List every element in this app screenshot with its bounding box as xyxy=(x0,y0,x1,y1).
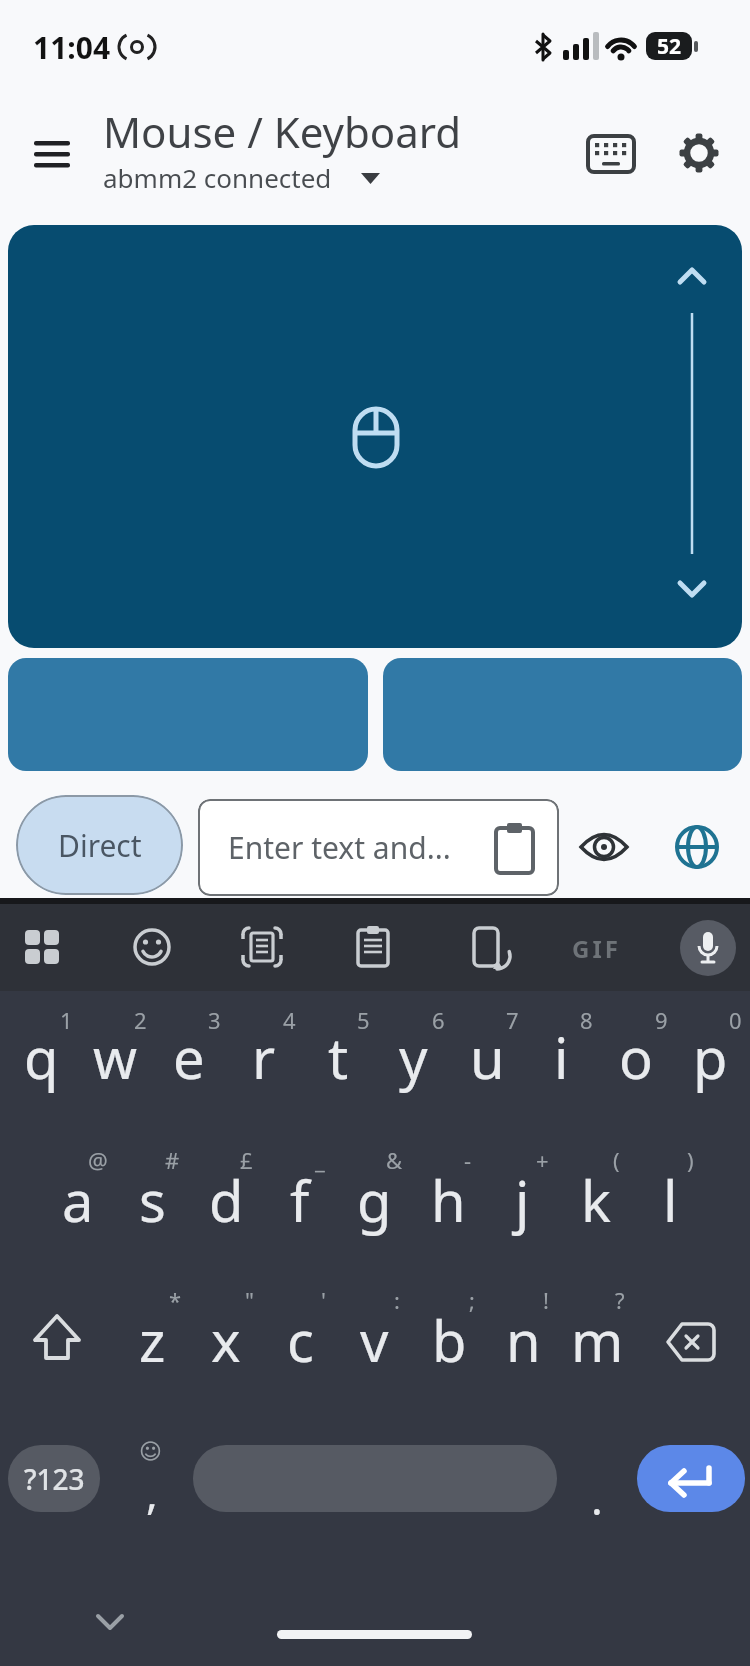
staticText: q xyxy=(24,1019,59,1095)
button[interactable] xyxy=(240,925,284,969)
staticText: , xyxy=(146,1462,158,1522)
button[interactable] xyxy=(578,822,630,872)
staticText: + xyxy=(536,1145,549,1175)
staticText: m xyxy=(571,1302,624,1378)
staticText: ' xyxy=(321,1285,326,1315)
button[interactable] xyxy=(466,925,510,969)
staticText: # xyxy=(165,1145,180,1175)
button[interactable] xyxy=(8,658,368,771)
staticText: 7 xyxy=(506,1005,519,1035)
button[interactable] xyxy=(586,130,636,176)
staticText: w xyxy=(93,1019,138,1095)
staticText: 8 xyxy=(580,1005,593,1035)
staticText: 5 xyxy=(357,1005,370,1035)
staticText: i xyxy=(554,1019,569,1095)
button[interactable] xyxy=(351,925,395,969)
staticText: c xyxy=(287,1302,314,1378)
staticText: g xyxy=(357,1162,392,1238)
staticText: Mouse / Keyboard xyxy=(103,103,462,160)
staticText: j xyxy=(515,1162,530,1238)
button[interactable] xyxy=(8,225,742,648)
button[interactable] xyxy=(20,925,64,969)
staticText: v xyxy=(360,1302,389,1378)
button[interactable] xyxy=(637,1445,745,1512)
staticText: y xyxy=(399,1019,428,1095)
staticText: _ xyxy=(315,1145,325,1175)
staticText: ( xyxy=(613,1145,620,1175)
staticText: ) xyxy=(687,1145,694,1175)
staticText: ? xyxy=(615,1285,625,1315)
staticText: 9 xyxy=(655,1005,668,1035)
staticText: . xyxy=(591,1468,603,1528)
button[interactable] xyxy=(680,920,736,976)
button[interactable] xyxy=(25,1310,89,1374)
staticText: £ xyxy=(240,1145,253,1175)
button[interactable] xyxy=(383,658,742,771)
staticText: k xyxy=(581,1162,611,1238)
staticText: 6 xyxy=(432,1005,445,1035)
staticText: 1 xyxy=(60,1005,73,1035)
staticText: : xyxy=(394,1285,400,1315)
staticText: ☺ xyxy=(139,1439,162,1465)
staticText: @ xyxy=(88,1145,108,1175)
staticText: " xyxy=(245,1285,254,1315)
staticText: ! xyxy=(543,1285,549,1315)
staticText: ; xyxy=(469,1285,475,1315)
button[interactable]: GIF xyxy=(560,928,632,968)
staticText: & xyxy=(386,1145,403,1175)
staticText: GIF xyxy=(572,932,621,965)
staticText: e xyxy=(173,1019,205,1095)
staticText: 4 xyxy=(283,1005,296,1035)
button[interactable] xyxy=(130,925,174,969)
staticText: r xyxy=(252,1019,276,1095)
staticText: p xyxy=(693,1019,728,1095)
staticText: 3 xyxy=(208,1005,221,1035)
button[interactable]: ?123 xyxy=(8,1445,100,1512)
staticText: * xyxy=(169,1285,182,1315)
staticText: abmm2 connected xyxy=(103,160,332,195)
staticText: x xyxy=(211,1302,241,1378)
staticText: Direct xyxy=(58,825,142,866)
button[interactable]: Direct xyxy=(16,795,183,895)
staticText: 2 xyxy=(134,1005,147,1035)
staticText: 52 xyxy=(657,32,682,61)
staticText: d xyxy=(209,1162,244,1238)
button[interactable]: Enter text and... xyxy=(198,799,559,896)
staticText: n xyxy=(506,1302,541,1378)
staticText: s xyxy=(139,1162,166,1238)
staticText: b xyxy=(432,1302,467,1378)
button[interactable] xyxy=(674,824,720,870)
staticText: o xyxy=(619,1019,653,1095)
staticText: ?123 xyxy=(24,1460,85,1498)
button[interactable] xyxy=(86,1600,134,1644)
staticText: z xyxy=(139,1302,166,1378)
button[interactable] xyxy=(658,1310,722,1374)
staticText: l xyxy=(663,1162,678,1238)
staticText: a xyxy=(62,1162,94,1238)
button[interactable]: abmm2 connected xyxy=(103,160,332,195)
staticText: f xyxy=(290,1162,310,1238)
staticText: 0 xyxy=(729,1005,742,1035)
button[interactable] xyxy=(677,131,721,175)
staticText: t xyxy=(328,1019,349,1095)
staticText: Enter text and... xyxy=(228,827,451,868)
staticText: h xyxy=(431,1162,466,1238)
button[interactable] xyxy=(24,133,80,177)
staticText: - xyxy=(464,1145,472,1175)
staticText: u xyxy=(470,1019,505,1095)
staticText: 11:04 xyxy=(33,27,111,68)
button[interactable] xyxy=(193,1445,557,1512)
